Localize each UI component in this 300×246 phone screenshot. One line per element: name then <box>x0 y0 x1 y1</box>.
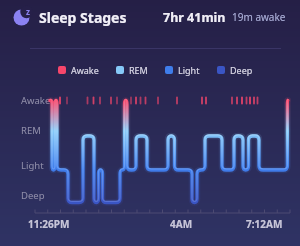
button[interactable]: z <box>12 0 286 34</box>
staticText: 4AM <box>170 217 193 231</box>
button[interactable]: Awake <box>58 64 253 76</box>
staticText: Awake <box>71 64 99 76</box>
staticText: z <box>26 6 30 17</box>
staticText: 7:12AM <box>246 217 283 231</box>
staticText: 19m awake <box>232 10 286 24</box>
staticText: 7hr 41min <box>163 9 226 26</box>
staticText: 11:26PM <box>28 217 70 231</box>
staticText: Light <box>21 159 44 172</box>
staticText: Deep <box>230 64 253 76</box>
staticText: Sleep Stages <box>39 8 127 27</box>
staticText: REM <box>129 64 148 76</box>
staticText: Deep <box>21 189 45 202</box>
staticText: Light <box>178 64 200 76</box>
staticText: REM <box>21 124 41 137</box>
staticText: Awake <box>21 94 51 107</box>
